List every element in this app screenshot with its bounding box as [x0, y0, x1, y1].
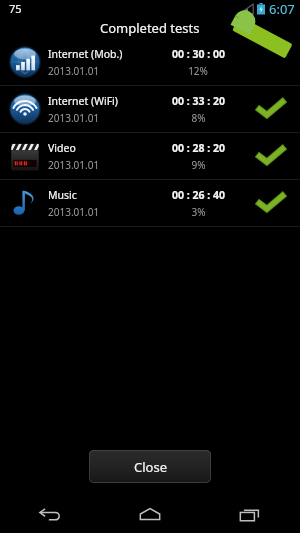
- staticText: 00 : 26 : 40: [172, 188, 225, 202]
- staticText: 3%: [191, 205, 206, 219]
- staticText: 8%: [191, 111, 206, 125]
- button[interactable]: Home: [100, 497, 200, 533]
- staticText: Internet (Mob.): [48, 47, 123, 61]
- staticText: Completed tests: [100, 19, 200, 37]
- staticText: 75: [9, 1, 22, 16]
- staticText: 00 : 30 : 00: [172, 47, 225, 61]
- staticText: 9%: [191, 158, 206, 172]
- staticText: 2013.01.01: [48, 205, 100, 219]
- staticText: 00 : 33 : 20: [172, 94, 225, 108]
- button[interactable]: Close: [89, 450, 211, 483]
- staticText: 6:07: [269, 0, 295, 17]
- staticText: Music: [48, 188, 77, 202]
- staticText: Video: [48, 141, 76, 155]
- staticText: Close: [134, 458, 167, 476]
- button[interactable]: Internet (WiFi): [0, 86, 300, 132]
- staticText: 12%: [188, 64, 208, 78]
- button[interactable]: Internet (Mob.): [0, 39, 300, 85]
- staticText: Internet (WiFi): [48, 94, 118, 108]
- staticText: 2013.01.01: [48, 158, 100, 172]
- button[interactable]: Back: [0, 497, 100, 533]
- button[interactable]: Music: [0, 180, 300, 226]
- staticText: 00 : 28 : 20: [172, 141, 225, 155]
- staticText: 2013.01.01: [48, 111, 100, 125]
- button[interactable]: Video: [0, 133, 300, 179]
- staticText: 2013.01.01: [48, 64, 100, 78]
- button[interactable]: Recent apps: [200, 497, 300, 533]
